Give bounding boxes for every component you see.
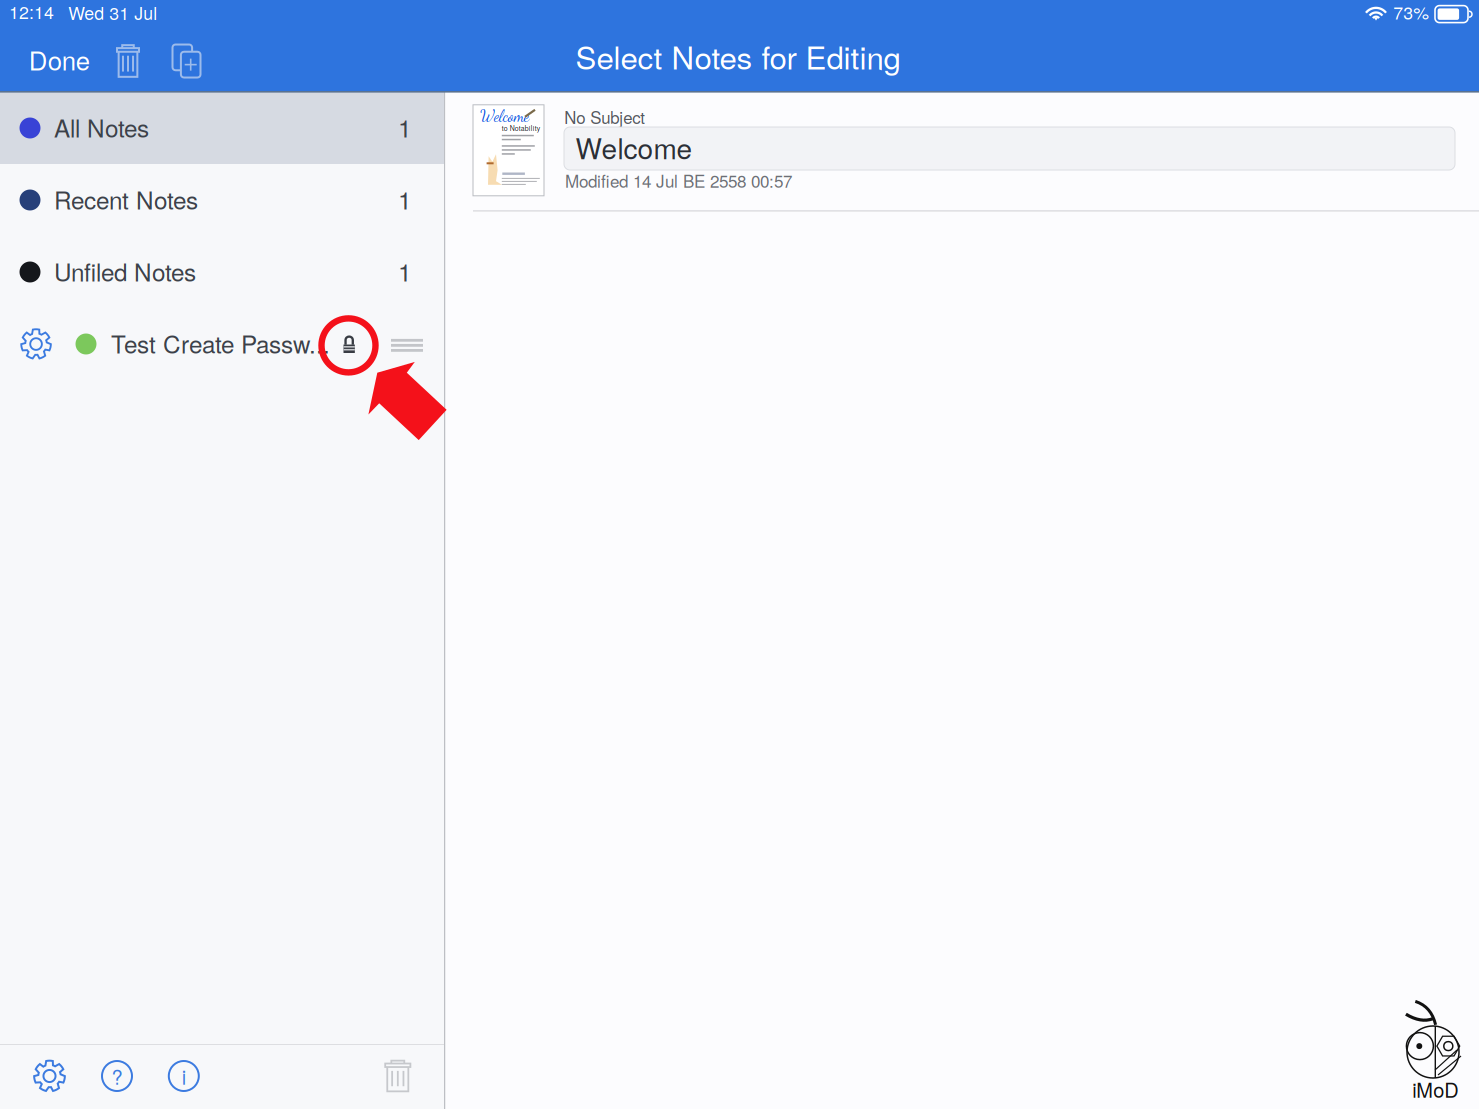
staticText: Test Create Passw... xyxy=(111,326,330,360)
staticText: All Notes xyxy=(54,110,149,144)
staticText: No Subject xyxy=(564,105,645,129)
button[interactable]: Delete xyxy=(370,1048,426,1104)
staticText: Welcome xyxy=(480,106,529,125)
button[interactable]: Delete xyxy=(105,38,151,84)
staticText: Welcome xyxy=(575,127,692,167)
staticText: Select Notes for Editing xyxy=(576,34,901,78)
staticText: Unfiled Notes xyxy=(54,254,196,288)
staticText: Recent Notes xyxy=(54,182,198,216)
staticText: Modified 14 Jul BE 2558 00:57 xyxy=(565,168,792,192)
button[interactable]: Help xyxy=(89,1048,145,1104)
button[interactable]: Welcome xyxy=(445,92,1479,210)
staticText: 73% xyxy=(1393,0,1429,25)
button[interactable]: Done xyxy=(31,38,91,84)
button[interactable]: All Notes xyxy=(0,92,444,164)
staticText: to Notability xyxy=(502,123,540,133)
button[interactable]: Unfiled Notes xyxy=(0,236,444,308)
staticText: Wed 31 Jul xyxy=(68,0,157,25)
staticText: i xyxy=(182,1062,186,1090)
button[interactable]: About xyxy=(156,1048,212,1104)
button[interactable]: Recent Notes xyxy=(0,164,444,236)
staticText: iMoD xyxy=(1412,1075,1458,1103)
button[interactable]: Test Create Passw... xyxy=(0,308,444,380)
staticText: 12:14 xyxy=(9,0,54,24)
staticText: Done xyxy=(29,41,90,78)
button[interactable]: New Note xyxy=(163,38,209,84)
button[interactable]: Settings xyxy=(21,1048,77,1104)
staticText: 1 xyxy=(398,253,412,288)
staticText: ? xyxy=(111,1062,122,1090)
staticText: 1 xyxy=(398,109,412,144)
staticText: 1 xyxy=(398,181,412,216)
